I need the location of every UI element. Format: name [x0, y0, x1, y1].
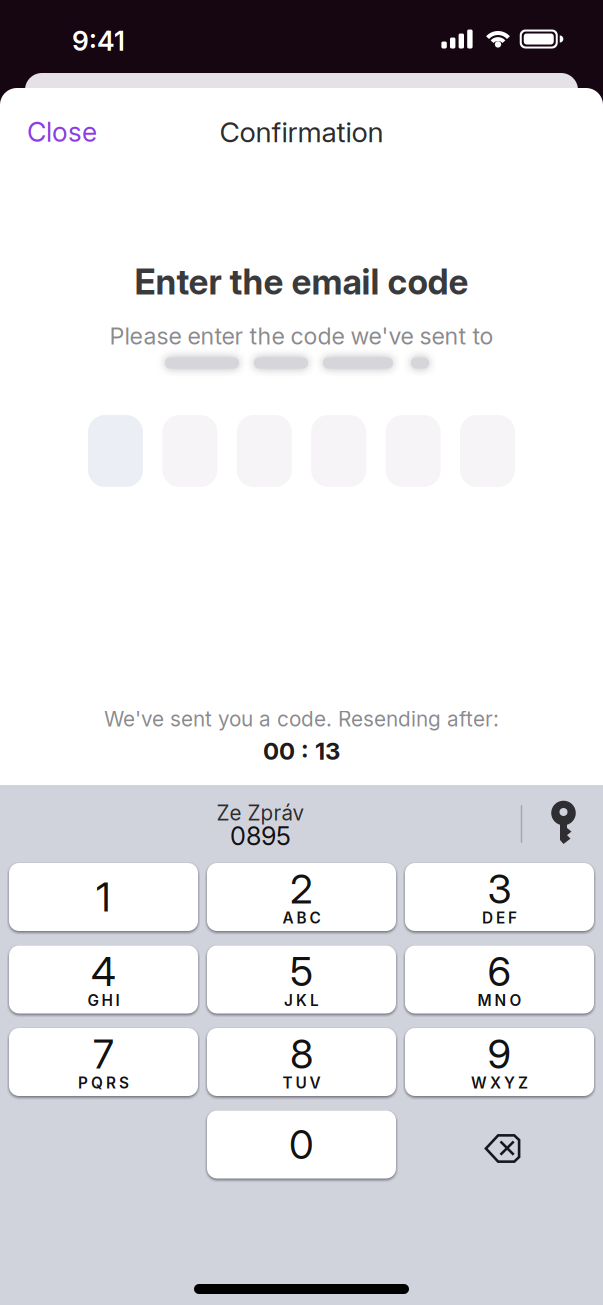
- staticText: Enter the email code: [134, 261, 468, 303]
- staticText: 3: [487, 865, 511, 913]
- staticText: 2: [290, 865, 313, 913]
- staticText: A B C: [282, 909, 320, 927]
- staticText: M N O: [477, 991, 521, 1010]
- staticText: J K L: [284, 991, 319, 1010]
- button[interactable]: 9: [405, 1028, 594, 1096]
- staticText: D E F: [482, 909, 517, 927]
- staticText: G H I: [87, 991, 119, 1010]
- staticText: Confirmation: [219, 115, 383, 149]
- staticText: 5: [290, 947, 313, 996]
- staticText: 9:41: [72, 25, 125, 57]
- staticText: 9: [487, 1030, 511, 1078]
- button[interactable]: Code digit: [88, 415, 143, 487]
- staticText: 8: [290, 1030, 313, 1078]
- button[interactable]: 6: [405, 945, 594, 1013]
- button[interactable]: 4: [9, 945, 198, 1013]
- staticText: P Q R S: [78, 1074, 129, 1092]
- button[interactable]: 2: [207, 863, 396, 931]
- staticText: 1: [96, 873, 111, 921]
- staticText: W X Y Z: [471, 1074, 528, 1092]
- button[interactable]: 1: [9, 863, 198, 931]
- button[interactable]: 7: [9, 1028, 198, 1096]
- staticText: 0: [289, 1120, 314, 1169]
- staticText: Please enter the code we've sent to: [109, 322, 493, 350]
- button[interactable]: Delete: [405, 1110, 594, 1178]
- staticText: 00 : 13: [263, 736, 340, 765]
- staticText: 4: [91, 947, 116, 996]
- button[interactable]: Close: [12, 108, 172, 156]
- button[interactable]: 5: [207, 945, 396, 1013]
- staticText: Ze Zpráv: [216, 800, 304, 825]
- staticText: Close: [27, 116, 97, 148]
- button[interactable]: 3: [405, 863, 594, 931]
- staticText: 7: [93, 1030, 114, 1078]
- staticText: We've sent you a code. Resending after:: [104, 706, 499, 732]
- staticText: 0895: [230, 821, 291, 851]
- staticText: 6: [487, 947, 511, 996]
- button[interactable]: Passwords: [549, 800, 579, 846]
- button[interactable]: 0: [207, 1110, 396, 1178]
- button[interactable]: 8: [207, 1028, 396, 1096]
- staticText: T U V: [282, 1074, 320, 1092]
